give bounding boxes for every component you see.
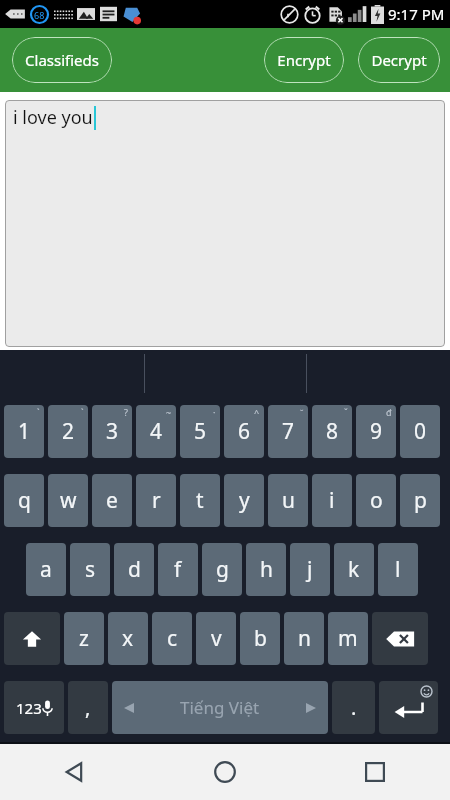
button[interactable]: Recent apps: [300, 744, 450, 800]
button[interactable]: 5: [180, 405, 220, 458]
button[interactable]: a: [26, 543, 66, 596]
staticText: ˘: [300, 406, 304, 418]
staticText: b: [254, 624, 267, 653]
staticText: m: [338, 624, 358, 653]
button[interactable]: z: [64, 612, 104, 665]
button[interactable]: i: [312, 474, 352, 527]
staticText: p: [414, 486, 427, 515]
staticText: v: [211, 624, 222, 653]
button[interactable]: Symbols and voice input: [4, 681, 64, 734]
staticText: y: [239, 486, 250, 515]
staticText: ˇ: [344, 406, 348, 418]
staticText: 9: [370, 417, 383, 446]
staticText: 5: [194, 417, 207, 446]
button[interactable]: 1: [4, 405, 44, 458]
staticText: w: [60, 486, 77, 515]
staticText: ~: [166, 406, 172, 418]
staticText: đ: [386, 406, 392, 418]
staticText: i love you: [13, 105, 93, 130]
button[interactable]: Backspace: [372, 612, 428, 665]
button[interactable]: Back: [0, 744, 150, 800]
button[interactable]: h: [246, 543, 286, 596]
button[interactable]: l: [378, 543, 418, 596]
staticText: t: [196, 486, 204, 515]
staticText: 68: [34, 9, 45, 21]
staticText: a: [40, 555, 52, 584]
button[interactable]: Encrypt: [264, 37, 344, 83]
button[interactable]: ,: [68, 681, 108, 734]
button[interactable]: 7: [268, 405, 308, 458]
button[interactable]: f: [158, 543, 198, 596]
button[interactable]: g: [202, 543, 242, 596]
staticText: k: [348, 555, 360, 584]
button[interactable]: 0: [400, 405, 440, 458]
staticText: s: [85, 555, 96, 584]
button[interactable]: s: [70, 543, 110, 596]
button[interactable]: p: [400, 474, 440, 527]
button[interactable]: j: [290, 543, 330, 596]
staticText: 9:17 PM: [388, 4, 445, 24]
staticText: j: [307, 555, 313, 584]
button[interactable]: Shift: [4, 612, 60, 665]
staticText: Classifieds: [25, 50, 99, 70]
staticText: g: [216, 555, 229, 584]
staticText: d: [128, 555, 141, 584]
staticText: z: [79, 624, 89, 653]
button[interactable]: t: [180, 474, 220, 527]
button[interactable]: 2: [48, 405, 88, 458]
button[interactable]: 9: [356, 405, 396, 458]
staticText: 1: [18, 417, 31, 446]
staticText: ˋ: [81, 406, 84, 418]
staticText: f: [174, 555, 182, 584]
button[interactable]: 3: [92, 405, 132, 458]
button[interactable]: .: [332, 681, 375, 734]
staticText: o: [370, 486, 383, 515]
staticText: 123: [16, 698, 42, 718]
staticText: u: [282, 486, 295, 515]
staticText: l: [395, 555, 401, 584]
button[interactable]: Home: [150, 744, 300, 800]
button[interactable]: x: [108, 612, 148, 665]
staticText: 4: [150, 417, 163, 446]
button[interactable]: w: [48, 474, 88, 527]
staticText: 6: [238, 417, 251, 446]
button[interactable]: r: [136, 474, 176, 527]
button[interactable]: q: [4, 474, 44, 527]
button[interactable]: Enter: [379, 681, 438, 734]
button[interactable]: n: [284, 612, 324, 665]
staticText: Tiếng Việt: [180, 696, 260, 719]
staticText: Encrypt: [277, 50, 331, 70]
staticText: c: [167, 624, 178, 653]
staticText: h: [260, 555, 273, 584]
button[interactable]: c: [152, 612, 192, 665]
staticText: i: [329, 486, 335, 515]
staticText: r: [152, 486, 161, 515]
staticText: x: [122, 624, 134, 653]
staticText: 2: [62, 417, 75, 446]
button[interactable]: u: [268, 474, 308, 527]
button[interactable]: b: [240, 612, 280, 665]
button[interactable]: Classifieds: [12, 37, 112, 83]
staticText: ?: [124, 406, 128, 418]
button[interactable]: 6: [224, 405, 264, 458]
button[interactable]: 4: [136, 405, 176, 458]
button[interactable]: k: [334, 543, 374, 596]
button[interactable]: v: [196, 612, 236, 665]
button[interactable]: i love you: [5, 100, 445, 347]
button[interactable]: y: [224, 474, 264, 527]
staticText: e: [106, 486, 118, 515]
button[interactable]: Space, Tiếng Việt: [112, 681, 328, 734]
button[interactable]: d: [114, 543, 154, 596]
button[interactable]: o: [356, 474, 396, 527]
staticText: q: [18, 486, 31, 515]
staticText: ^: [254, 406, 260, 418]
staticText: 0: [414, 417, 427, 446]
staticText: ˋ: [37, 406, 40, 418]
button[interactable]: m: [328, 612, 368, 665]
staticText: ·: [213, 406, 216, 418]
staticText: .: [351, 694, 357, 721]
staticText: ,: [85, 694, 91, 721]
button[interactable]: e: [92, 474, 132, 527]
button[interactable]: 8: [312, 405, 352, 458]
button[interactable]: Decrypt: [358, 37, 440, 83]
